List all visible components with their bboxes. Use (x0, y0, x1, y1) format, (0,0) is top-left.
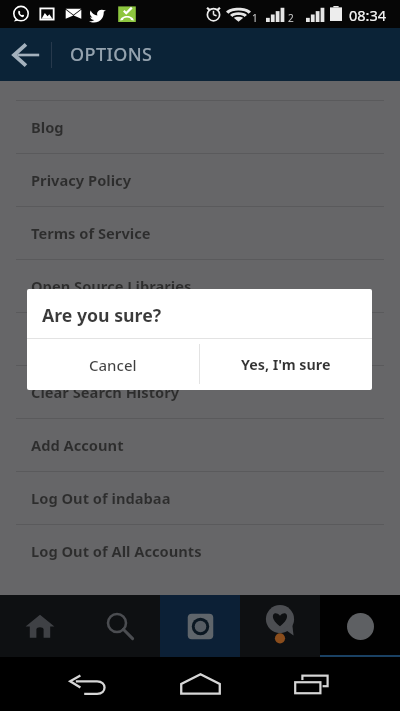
staticText: OPTIONS (70, 42, 153, 67)
button[interactable]: Blog (0, 101, 400, 153)
button[interactable]: Clear Search History (0, 366, 400, 418)
button[interactable]: Cancel (27, 339, 199, 390)
staticText: Log Out of indabaa (31, 488, 171, 508)
staticText: Blog (31, 117, 64, 137)
button[interactable]: Recent apps (250, 657, 374, 711)
staticText: Yes, I'm sure (241, 355, 331, 374)
button[interactable]: Report a Problem (0, 313, 400, 365)
button[interactable]: Home (0, 595, 80, 657)
button[interactable]: Log Out of All Accounts (0, 525, 400, 577)
button[interactable]: Camera (160, 595, 240, 657)
button[interactable]: Home (150, 657, 250, 711)
button[interactable]: Add Account (0, 419, 400, 471)
button[interactable]: Terms of Service (0, 207, 400, 259)
button[interactable]: Profile (320, 595, 400, 657)
button[interactable]: Back (26, 657, 150, 711)
staticText: Open Source Libraries (31, 276, 192, 296)
staticText: 08:34 (349, 5, 387, 25)
staticText: Clear Search History (31, 382, 180, 402)
button[interactable]: Log Out of indabaa (0, 472, 400, 524)
staticText: Terms of Service (31, 223, 151, 243)
staticText: Report a Problem (31, 329, 159, 349)
staticText: Log Out of All Accounts (31, 541, 202, 561)
staticText: Are you sure? (42, 303, 162, 327)
button[interactable]: Yes, I'm sure (199, 339, 372, 390)
button[interactable]: Activity (240, 595, 320, 657)
button[interactable]: Search (80, 595, 160, 657)
staticText: 2 (288, 11, 294, 25)
button[interactable]: Privacy Policy (0, 154, 400, 206)
staticText: Privacy Policy (31, 170, 132, 190)
staticText: Cancel (89, 355, 137, 375)
staticText: 1 (252, 11, 258, 25)
staticText: Add Account (31, 435, 124, 455)
button[interactable]: Navigate up (0, 28, 53, 81)
button[interactable]: Open Source Libraries (0, 260, 400, 312)
